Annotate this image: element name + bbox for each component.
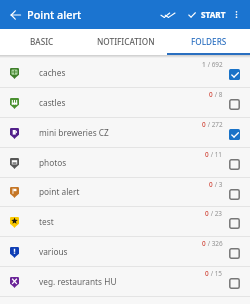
staticText: Point alert xyxy=(27,7,82,22)
staticText: 0 xyxy=(209,90,213,99)
button[interactable]: veg. restaurants HU xyxy=(0,267,250,297)
button[interactable]: Toggle caches xyxy=(227,67,241,81)
button[interactable]: Back xyxy=(0,0,27,29)
staticText: / 692 xyxy=(206,60,223,69)
button[interactable]: photos xyxy=(0,148,250,178)
staticText: 0 xyxy=(209,180,213,189)
staticText: 0 xyxy=(205,269,209,278)
button[interactable]: START xyxy=(188,0,226,29)
button[interactable]: Toggle photos xyxy=(227,157,241,171)
staticText: START xyxy=(201,9,226,20)
staticText: / 272 xyxy=(206,120,223,129)
staticText: veg. restaurants HU xyxy=(39,276,117,287)
button[interactable]: Toggle test xyxy=(227,216,241,230)
button[interactable]: FOLDERS xyxy=(167,29,250,53)
button[interactable]: various xyxy=(0,237,250,267)
staticText: / 3 xyxy=(213,180,223,189)
staticText: photos xyxy=(39,157,67,168)
staticText: various xyxy=(39,246,68,257)
staticText: BASIC xyxy=(30,36,54,47)
button[interactable]: Toggle castles xyxy=(227,97,241,111)
button[interactable]: Toggle veg. restaurants HU xyxy=(227,276,241,290)
staticText: 0 xyxy=(202,120,206,129)
button[interactable]: Toggle mini breweries CZ xyxy=(227,127,241,141)
button[interactable]: Select all xyxy=(157,0,179,29)
button[interactable]: Toggle various xyxy=(227,246,241,260)
staticText: FOLDERS xyxy=(191,36,227,47)
button[interactable]: Toggle point alert xyxy=(227,187,241,201)
staticText: / 11 xyxy=(209,150,223,159)
button[interactable]: point alert xyxy=(0,178,250,207)
button[interactable]: More options xyxy=(227,0,245,29)
staticText: NOTIFICATION xyxy=(97,36,155,47)
staticText: point alert xyxy=(39,186,80,197)
staticText: mini breweries CZ xyxy=(39,127,109,138)
button[interactable]: mini breweries CZ xyxy=(0,118,250,148)
staticText: 1 xyxy=(202,60,206,69)
staticText: 0 xyxy=(202,239,206,248)
staticText: 0 xyxy=(205,150,209,159)
staticText: / 15 xyxy=(209,269,223,278)
staticText: caches xyxy=(39,67,66,78)
button[interactable]: NOTIFICATION xyxy=(84,29,167,53)
button[interactable]: caches xyxy=(0,58,250,88)
staticText: / 23 xyxy=(209,209,223,218)
staticText: / 326 xyxy=(206,239,223,248)
staticText: test xyxy=(39,216,54,227)
staticText: castles xyxy=(39,97,66,108)
staticText: / 8 xyxy=(213,90,223,99)
button[interactable]: BASIC xyxy=(0,29,84,53)
staticText: 0 xyxy=(205,209,209,218)
button[interactable]: test xyxy=(0,207,250,237)
button[interactable]: castles xyxy=(0,88,250,118)
